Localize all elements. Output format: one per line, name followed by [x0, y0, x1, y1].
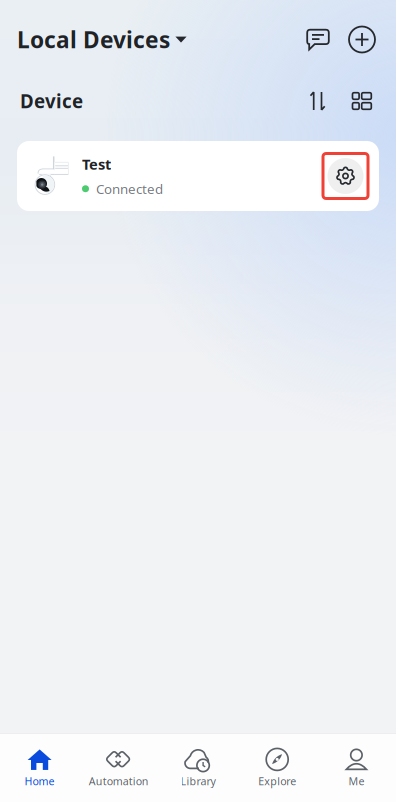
staticText: Explore [258, 774, 296, 788]
button[interactable]: Me [317, 738, 396, 798]
button[interactable]: Sort [305, 88, 331, 114]
button[interactable]: Test [17, 141, 379, 211]
button[interactable]: Add device [347, 24, 377, 54]
staticText: Library [180, 774, 215, 788]
button[interactable]: Automation [79, 738, 158, 798]
staticText: Me [348, 774, 364, 788]
staticText: Automation [89, 774, 149, 788]
staticText: Test [82, 154, 111, 174]
staticText: Device [20, 89, 83, 113]
button[interactable]: Messages [303, 24, 333, 54]
staticText: Home [25, 774, 55, 788]
button[interactable]: Local Devices [17, 20, 187, 58]
button[interactable]: Library [158, 738, 238, 798]
button[interactable]: Home [0, 738, 79, 798]
button[interactable]: Change layout [349, 88, 375, 114]
staticText: Local Devices [17, 24, 170, 54]
button[interactable]: Explore [238, 738, 317, 798]
staticText: Connected [96, 180, 163, 198]
